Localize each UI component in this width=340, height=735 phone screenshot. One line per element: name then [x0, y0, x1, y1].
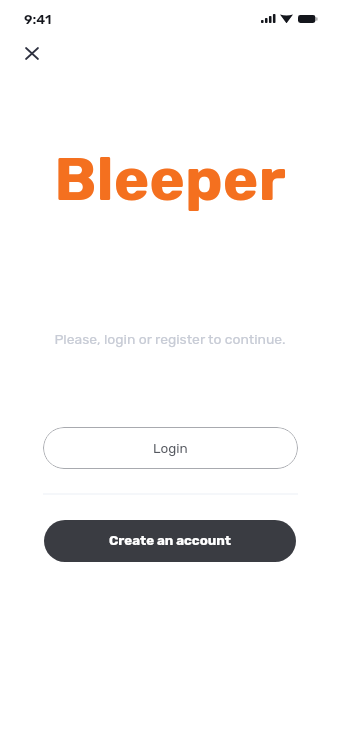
button[interactable]: Login — [43, 427, 298, 469]
staticText: Login — [153, 440, 188, 456]
staticText: Please, login or register to continue. — [0, 331, 340, 347]
staticText: Bleeper — [0, 144, 340, 215]
staticText: 9:41 — [24, 11, 52, 27]
button[interactable]: Close — [12, 33, 52, 73]
button[interactable]: Create an account — [44, 520, 296, 562]
staticText: Create an account — [109, 533, 231, 549]
